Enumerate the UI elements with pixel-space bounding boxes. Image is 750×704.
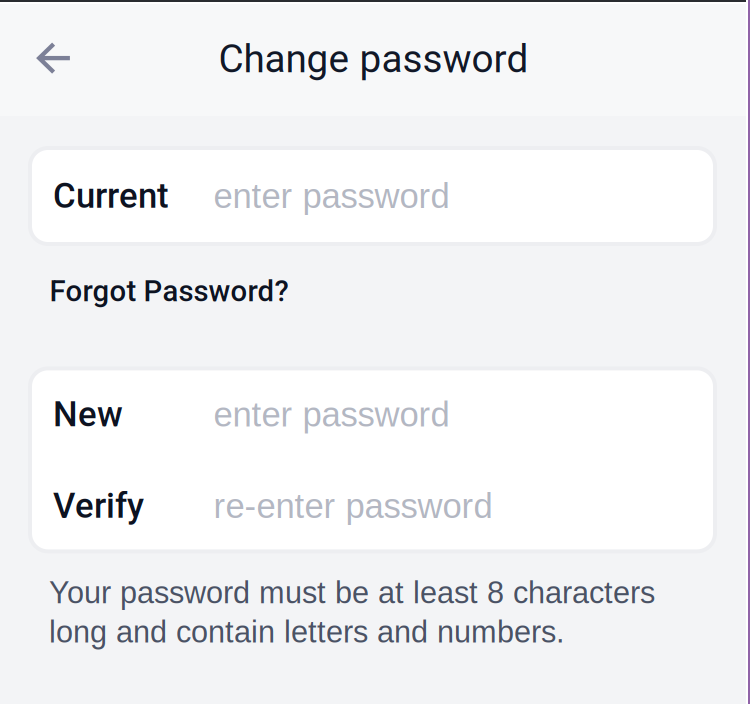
staticText: New bbox=[53, 394, 123, 435]
staticText: enter password bbox=[213, 395, 449, 434]
staticText: enter password bbox=[213, 177, 449, 215]
staticText: Your password must be at least 8 charact… bbox=[49, 575, 655, 610]
button[interactable]: Back bbox=[0, 24, 90, 92]
button[interactable]: Forgot Password? bbox=[30, 244, 715, 342]
staticText: Forgot Password? bbox=[49, 274, 288, 308]
staticText: long and contain letters and numbers. bbox=[49, 615, 565, 649]
staticText: Verify bbox=[53, 486, 144, 526]
staticText: Change password bbox=[218, 36, 528, 82]
staticText: re-enter password bbox=[213, 486, 492, 525]
staticText: Current bbox=[53, 176, 169, 216]
